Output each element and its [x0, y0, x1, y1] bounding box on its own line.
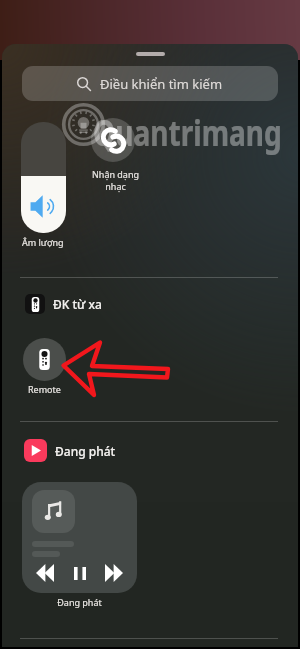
staticText: Đang phát: [22, 596, 137, 608]
staticText: Nhận dạng nhạc: [81, 168, 150, 193]
staticText: Quantrimang: [93, 108, 282, 157]
button[interactable]: Remote: [23, 338, 66, 381]
button[interactable]: Previous track: [22, 482, 137, 593]
button[interactable]: Previous track: [34, 562, 56, 584]
button[interactable]: Pause: [69, 562, 91, 584]
button[interactable]: Nhận dạng nhạc: [91, 118, 135, 162]
staticText: ĐK từ xa: [53, 296, 102, 312]
staticText: Remote: [28, 383, 61, 395]
staticText: Điều khiển tìm kiếm: [100, 75, 223, 93]
button[interactable]: Next track: [103, 562, 125, 584]
staticText: Đang phát: [55, 443, 116, 459]
button[interactable]: Âm lượng: [21, 122, 66, 233]
button[interactable]: Điều khiển tìm kiếm: [22, 66, 278, 101]
staticText: Âm lượng: [22, 236, 64, 248]
